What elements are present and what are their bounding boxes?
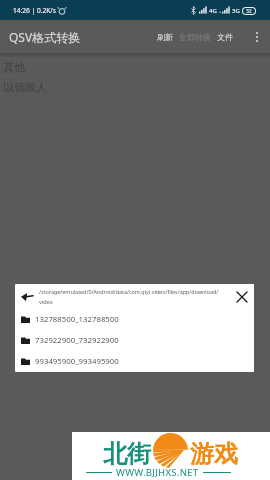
button[interactable]: Close — [233, 288, 251, 306]
staticText: 以德服人 — [3, 80, 47, 94]
button[interactable]: 全部转换 — [176, 24, 214, 50]
staticText: 游戏 — [190, 439, 238, 469]
button[interactable]: 刷新 — [154, 24, 176, 50]
staticText: 32 — [246, 8, 252, 14]
staticText: 4G — [209, 7, 217, 15]
button[interactable]: More options — [244, 20, 270, 53]
staticText: /storage/emulated/0/Android/data/com.qiy… — [39, 288, 230, 305]
staticText: 132788500_132788500 — [35, 314, 119, 325]
staticText: 993495900_993495900 — [35, 356, 119, 367]
staticText: 732922900_732922900 — [35, 335, 119, 346]
button[interactable]: 732922900_732922900 — [15, 330, 254, 351]
staticText: 其他 — [3, 60, 25, 74]
button[interactable]: 132788500_132788500 — [15, 309, 254, 330]
button[interactable]: 993495900_993495900 — [15, 351, 254, 372]
staticText: QSV格式转换 — [9, 29, 81, 45]
staticText: 3G — [232, 7, 240, 15]
button[interactable]: Back — [19, 289, 35, 305]
staticText: 北街 — [103, 439, 151, 469]
staticText: 14:26 | 0.2K/s — [13, 6, 56, 15]
staticText: WWW.BJJHXS.NET — [116, 466, 199, 479]
button[interactable]: 文件 — [214, 24, 236, 50]
button[interactable]: 以德服人 — [0, 76, 270, 99]
